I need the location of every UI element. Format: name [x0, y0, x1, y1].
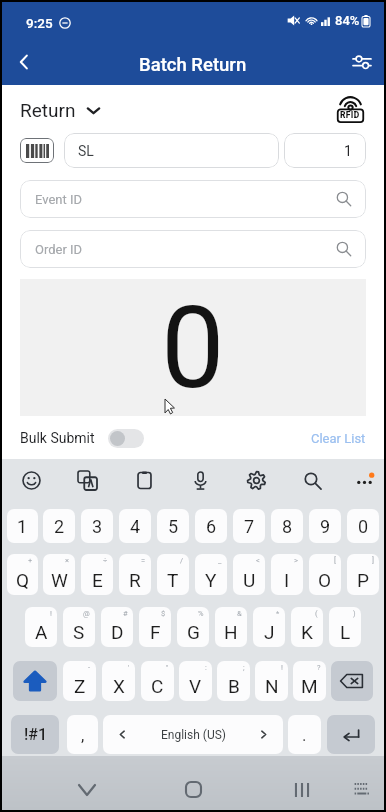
button[interactable]: ÷: [81, 554, 113, 595]
button[interactable]: Bulk Submit toggle: [108, 429, 144, 448]
staticText: $: [161, 609, 166, 618]
button[interactable]: *: [253, 607, 285, 647]
button[interactable]: >: [271, 554, 303, 595]
button[interactable]: 1: [284, 133, 366, 168]
button[interactable]: 1: [7, 509, 38, 543]
staticText: V: [189, 675, 202, 697]
staticText: J: [264, 621, 275, 643]
button[interactable]: ?: [293, 661, 326, 701]
staticText: N: [265, 675, 279, 697]
staticText: English (US): [161, 728, 226, 742]
staticText: H: [224, 621, 238, 643]
button[interactable]: (: [291, 607, 323, 647]
button[interactable]: ×: [43, 554, 75, 595]
button[interactable]: Switch keyboard: [346, 773, 378, 805]
staticText: _: [218, 556, 222, 565]
staticText: 9:25: [26, 15, 53, 31]
staticText: D: [111, 621, 124, 643]
staticText: T: [167, 569, 179, 591]
staticText: O: [318, 569, 332, 591]
button[interactable]: 7: [233, 509, 265, 543]
button[interactable]: Scan barcode: [20, 138, 54, 163]
staticText: &: [237, 609, 242, 618]
button[interactable]: ': [102, 661, 135, 701]
staticText: 2: [54, 516, 65, 537]
staticText: 8: [282, 516, 293, 537]
button[interactable]: Home: [175, 771, 212, 808]
button[interactable]: Backspace: [331, 661, 373, 701]
button[interactable]: Translate: [70, 463, 104, 497]
button[interactable]: =: [119, 554, 151, 595]
staticText: %: [198, 609, 204, 618]
button[interactable]: Hide keyboard: [68, 771, 105, 808]
button[interactable]: Search: [295, 463, 329, 497]
button[interactable]: Shift: [13, 661, 57, 701]
staticText: #: [123, 609, 128, 618]
button[interactable]: 3: [81, 509, 113, 543]
staticText: *: [276, 609, 280, 618]
staticText: 9: [320, 516, 331, 537]
staticText: F: [150, 621, 161, 643]
button[interactable]: &: [215, 607, 247, 647]
button[interactable]: /: [157, 554, 189, 595]
button[interactable]: Return: [20, 99, 101, 121]
staticText: =: [141, 556, 146, 565]
button[interactable]: Space: [103, 715, 283, 754]
button[interactable]: Event ID: [20, 180, 366, 218]
button[interactable]: 0: [347, 509, 379, 543]
button[interactable]: [: [309, 554, 341, 595]
staticText: X: [113, 675, 125, 697]
button[interactable]: !: [25, 607, 57, 647]
button[interactable]: 4: [119, 509, 151, 543]
button[interactable]: $: [139, 607, 171, 647]
staticText: Bulk Submit: [20, 430, 95, 446]
button[interactable]: .: [288, 715, 321, 754]
button[interactable]: Symbols: [11, 715, 59, 754]
button[interactable]: ;: [217, 661, 250, 701]
button[interactable]: 8: [271, 509, 303, 543]
staticText: 3: [92, 516, 103, 537]
button[interactable]: Order ID: [20, 230, 366, 268]
button[interactable]: <: [233, 554, 265, 595]
button[interactable]: %: [177, 607, 209, 647]
button[interactable]: @: [63, 607, 95, 647]
button[interactable]: Back: [2, 40, 46, 84]
button[interactable]: Clear List: [311, 431, 366, 446]
button[interactable]: Clipboard: [127, 463, 161, 497]
button[interactable]: Recent apps: [283, 771, 320, 808]
staticText: 1: [17, 516, 28, 537]
button[interactable]: ): [329, 607, 361, 647]
button[interactable]: 2: [43, 509, 75, 543]
staticText: ,: [81, 725, 85, 745]
button[interactable]: Filter settings: [340, 40, 384, 84]
staticText: ]: [372, 556, 374, 565]
button[interactable]: RFID scan: [334, 95, 366, 125]
button[interactable]: Emoji: [14, 463, 48, 497]
button[interactable]: ]: [347, 554, 379, 595]
button[interactable]: Enter: [327, 715, 375, 754]
button[interactable]: More options: [347, 463, 381, 497]
staticText: M: [301, 675, 318, 697]
staticText: :: [205, 663, 207, 672]
button[interactable]: Voice input: [183, 463, 217, 497]
button[interactable]: Keyboard settings: [239, 463, 273, 497]
staticText: Q: [16, 569, 30, 591]
button[interactable]: :: [179, 661, 212, 701]
staticText: !#1: [24, 725, 47, 744]
button[interactable]: +: [7, 554, 38, 595]
staticText: +: [28, 556, 33, 565]
button[interactable]: ": [141, 661, 174, 701]
button[interactable]: #: [101, 607, 133, 647]
button[interactable]: _: [195, 554, 227, 595]
staticText: -: [88, 663, 91, 672]
staticText: 7: [244, 516, 255, 537]
staticText: P: [357, 569, 369, 591]
button[interactable]: -: [63, 661, 96, 701]
button[interactable]: SL: [64, 133, 279, 168]
button[interactable]: !: [255, 661, 288, 701]
button[interactable]: 6: [195, 509, 227, 543]
button[interactable]: ,: [67, 715, 98, 754]
button[interactable]: 9: [309, 509, 341, 543]
button[interactable]: 5: [157, 509, 189, 543]
staticText: E: [92, 569, 103, 591]
